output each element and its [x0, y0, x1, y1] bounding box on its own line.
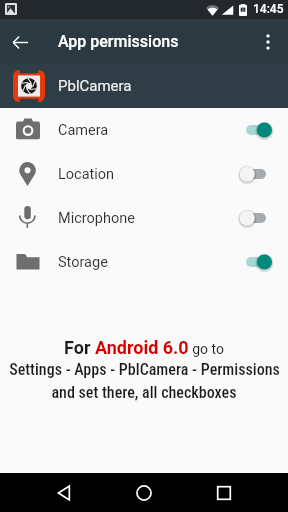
button[interactable]: Storage: [0, 240, 288, 284]
staticText: Camera: [58, 122, 109, 139]
button[interactable]: Back: [34, 473, 94, 512]
button[interactable]: Home: [114, 473, 174, 512]
button[interactable]: More options: [248, 22, 288, 62]
button[interactable]: Location: [0, 152, 288, 196]
button[interactable]: Microphone: [0, 196, 288, 240]
staticText: Settings - Apps - PblCamera - Permission…: [9, 360, 280, 379]
button[interactable]: Recent apps: [194, 473, 254, 512]
staticText: App permissions: [58, 32, 179, 51]
staticText: Location: [58, 166, 115, 183]
staticText: For Android 6.0 go to: [64, 337, 224, 358]
staticText: 14:45: [253, 2, 284, 16]
staticText: and set there, all checkboxes: [51, 383, 237, 402]
staticText: Microphone: [58, 210, 135, 227]
staticText: PblCamera: [58, 77, 132, 95]
button[interactable]: Navigate up: [0, 22, 40, 62]
button[interactable]: Camera: [0, 108, 288, 152]
button[interactable]: PblCamera: [0, 64, 288, 108]
staticText: Storage: [58, 254, 108, 271]
